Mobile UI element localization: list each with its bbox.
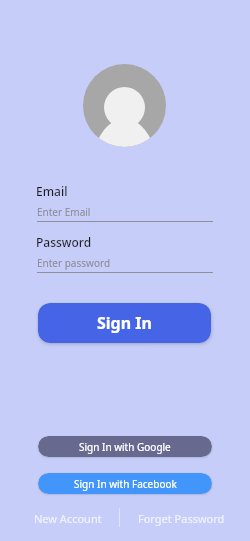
button[interactable]: Forget Password [137, 509, 224, 524]
staticText: New Account [34, 511, 102, 526]
staticText: Sign In with Facebook [74, 477, 177, 491]
button[interactable]: Enter Email [36, 203, 213, 222]
staticText: Sign In with Google [79, 440, 171, 454]
button[interactable]: Sign In with Facebook [38, 473, 212, 494]
button[interactable]: Enter password [36, 254, 213, 273]
staticText: Password [36, 234, 92, 250]
button[interactable]: Sign In with Google [38, 436, 212, 457]
staticText: Enter Email [37, 205, 91, 219]
button[interactable]: New Account [33, 509, 101, 524]
button[interactable]: Sign In [38, 303, 211, 343]
staticText: Forget Password [138, 511, 225, 526]
staticText: Enter password [37, 256, 111, 270]
staticText: Email [36, 183, 68, 199]
staticText: Sign In [97, 312, 152, 334]
